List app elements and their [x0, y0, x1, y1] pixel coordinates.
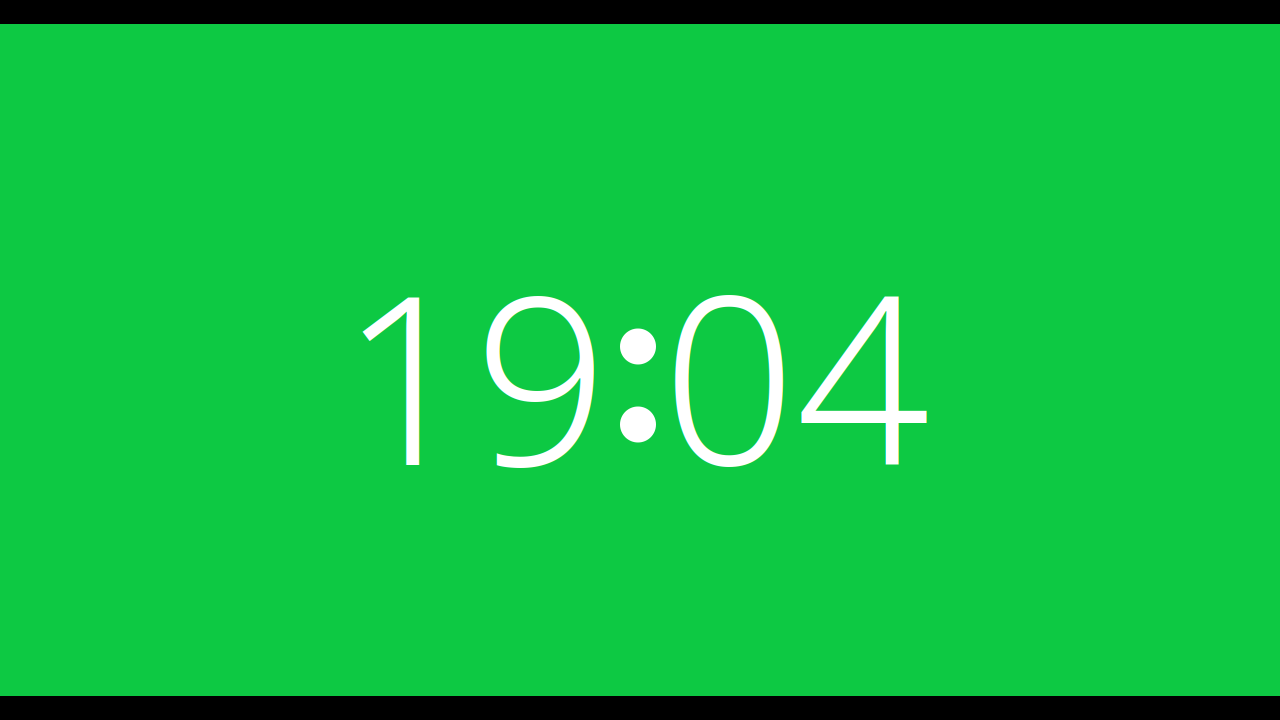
staticText: 19 [340, 218, 608, 530]
staticText: 04 [662, 218, 930, 530]
